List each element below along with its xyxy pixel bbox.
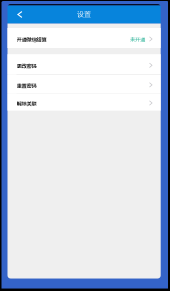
button[interactable]: 更改密码 [7,54,161,74]
staticText: 更改密码 [16,62,36,70]
staticText: 重置密码 [16,81,36,89]
button[interactable]: 重置密码 [7,75,161,93]
staticText: 设置 [77,10,91,19]
button[interactable]: Back [7,5,22,23]
button[interactable]: 开通微信结算 [7,28,161,48]
staticText: 开通微信结算 [16,36,46,43]
button[interactable]: 解除关联 [7,93,161,111]
staticText: 解除关联 [16,100,36,107]
staticText: 未开通 [130,36,145,43]
